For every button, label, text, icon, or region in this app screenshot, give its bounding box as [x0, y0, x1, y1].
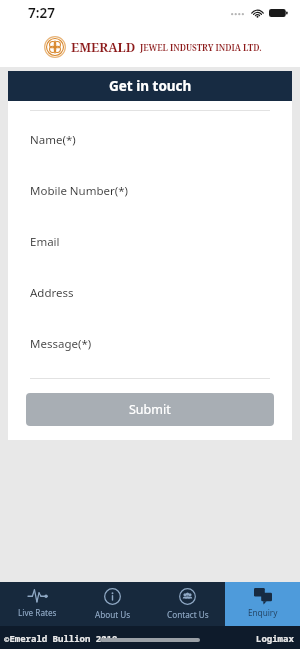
button[interactable]: Enquiry	[225, 582, 300, 626]
button[interactable]: Address	[8, 254, 292, 305]
staticText: JEWEL INDUSTRY INDIA LTD.	[140, 42, 262, 53]
staticText: Submit	[129, 401, 171, 418]
staticText: Email	[30, 234, 60, 250]
button[interactable]: Name(*)	[8, 111, 292, 152]
staticText: Message(*)	[30, 336, 92, 352]
button[interactable]: Live Rates	[0, 582, 75, 626]
other: Enquiry	[254, 588, 272, 603]
button[interactable]: Email	[8, 203, 292, 254]
staticText: Live Rates	[18, 607, 57, 618]
other: Live Rates	[28, 588, 47, 603]
button[interactable]: Submit	[26, 393, 274, 426]
staticText: Mobile Number(*)	[30, 183, 129, 199]
button[interactable]: Contact Us	[150, 582, 225, 626]
staticText: Get in touch	[109, 77, 192, 95]
staticText: Name(*)	[30, 132, 76, 148]
staticText: Address	[30, 285, 74, 301]
button[interactable]: About Us	[75, 582, 150, 626]
staticText: Logimax	[256, 632, 294, 644]
staticText: 7:27	[28, 4, 55, 22]
button[interactable]: Mobile Number(*)	[8, 152, 292, 203]
button[interactable]: Message(*)	[8, 305, 292, 356]
other: Contact Us	[179, 588, 196, 605]
staticText: ©Emerald Bullion 2019	[4, 632, 118, 644]
staticText: About Us	[95, 609, 131, 620]
other: About Us	[104, 588, 121, 605]
staticText: Contact Us	[167, 609, 209, 620]
staticText: Enquiry	[248, 607, 278, 618]
staticText: EMERALD	[71, 39, 136, 56]
